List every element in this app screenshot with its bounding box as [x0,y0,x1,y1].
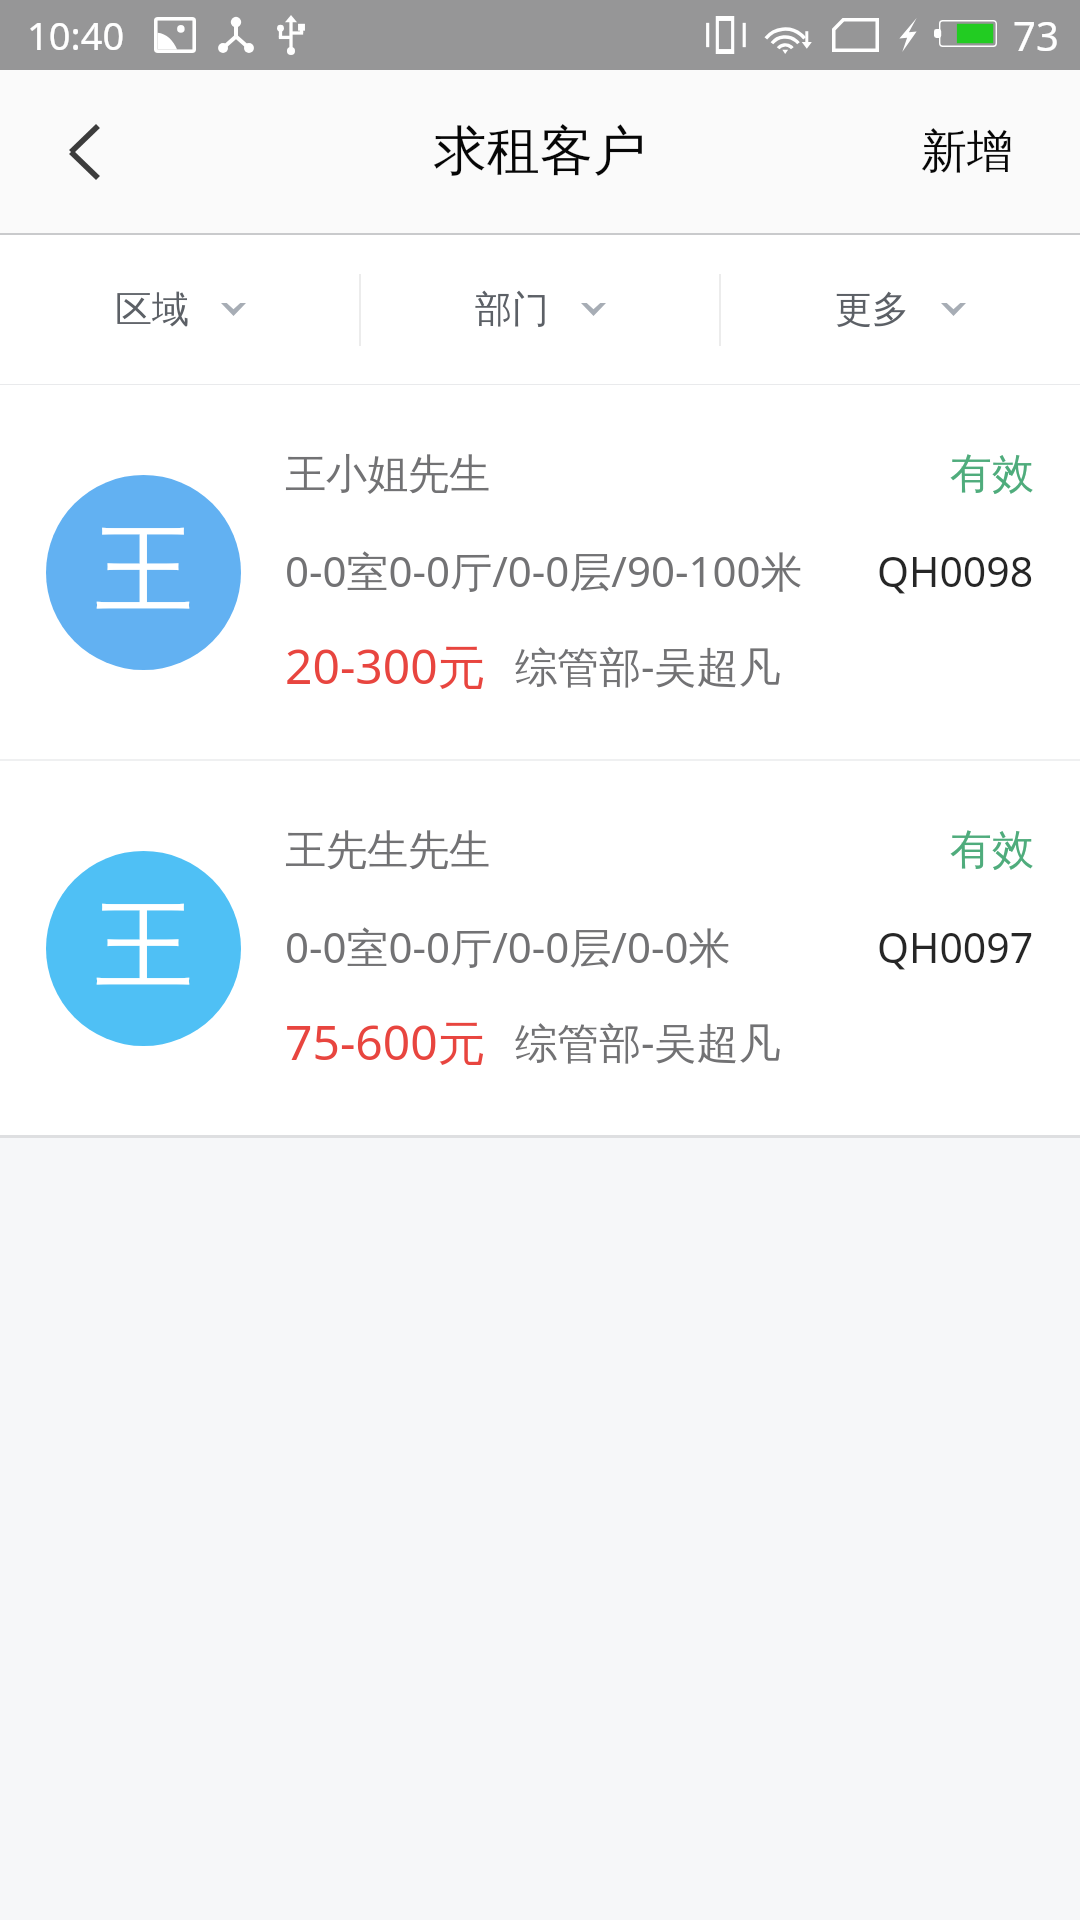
staticText: 0-0室0-0厅/0-0层/0-0米 [285,918,731,975]
button[interactable]: 王 [0,385,1080,759]
button[interactable]: 更多 [720,235,1080,384]
staticText: 王 [95,509,193,632]
staticText: QH0098 [877,543,1034,599]
staticText: QH0097 [877,919,1034,975]
staticText: 综管部-吴超凡 [515,1013,781,1070]
staticText: 新增 [921,123,1013,181]
staticText: 王先生先生 [285,825,490,877]
button[interactable]: 王 [0,761,1080,1135]
staticText: 20-300元 [285,633,486,699]
staticText: 区域 [115,286,189,333]
staticText: 王小姐先生 [285,449,490,501]
staticText: 75-600元 [285,1009,486,1075]
button[interactable]: Back [0,70,170,233]
staticText: 更多 [835,286,909,333]
staticText: 73 [1013,8,1059,62]
button[interactable]: 区域 [0,235,360,384]
staticText: 有效 [950,448,1034,501]
staticText: 部门 [475,286,549,333]
staticText: 求租客户 [434,118,646,185]
button[interactable]: 新增 [873,70,1080,233]
staticText: 有效 [950,824,1034,877]
staticText: 综管部-吴超凡 [515,637,781,694]
staticText: 0-0室0-0厅/0-0层/90-100米 [285,542,803,599]
staticText: 10:40 [27,9,125,61]
button[interactable]: 部门 [360,235,720,384]
staticText: 王 [95,885,193,1008]
